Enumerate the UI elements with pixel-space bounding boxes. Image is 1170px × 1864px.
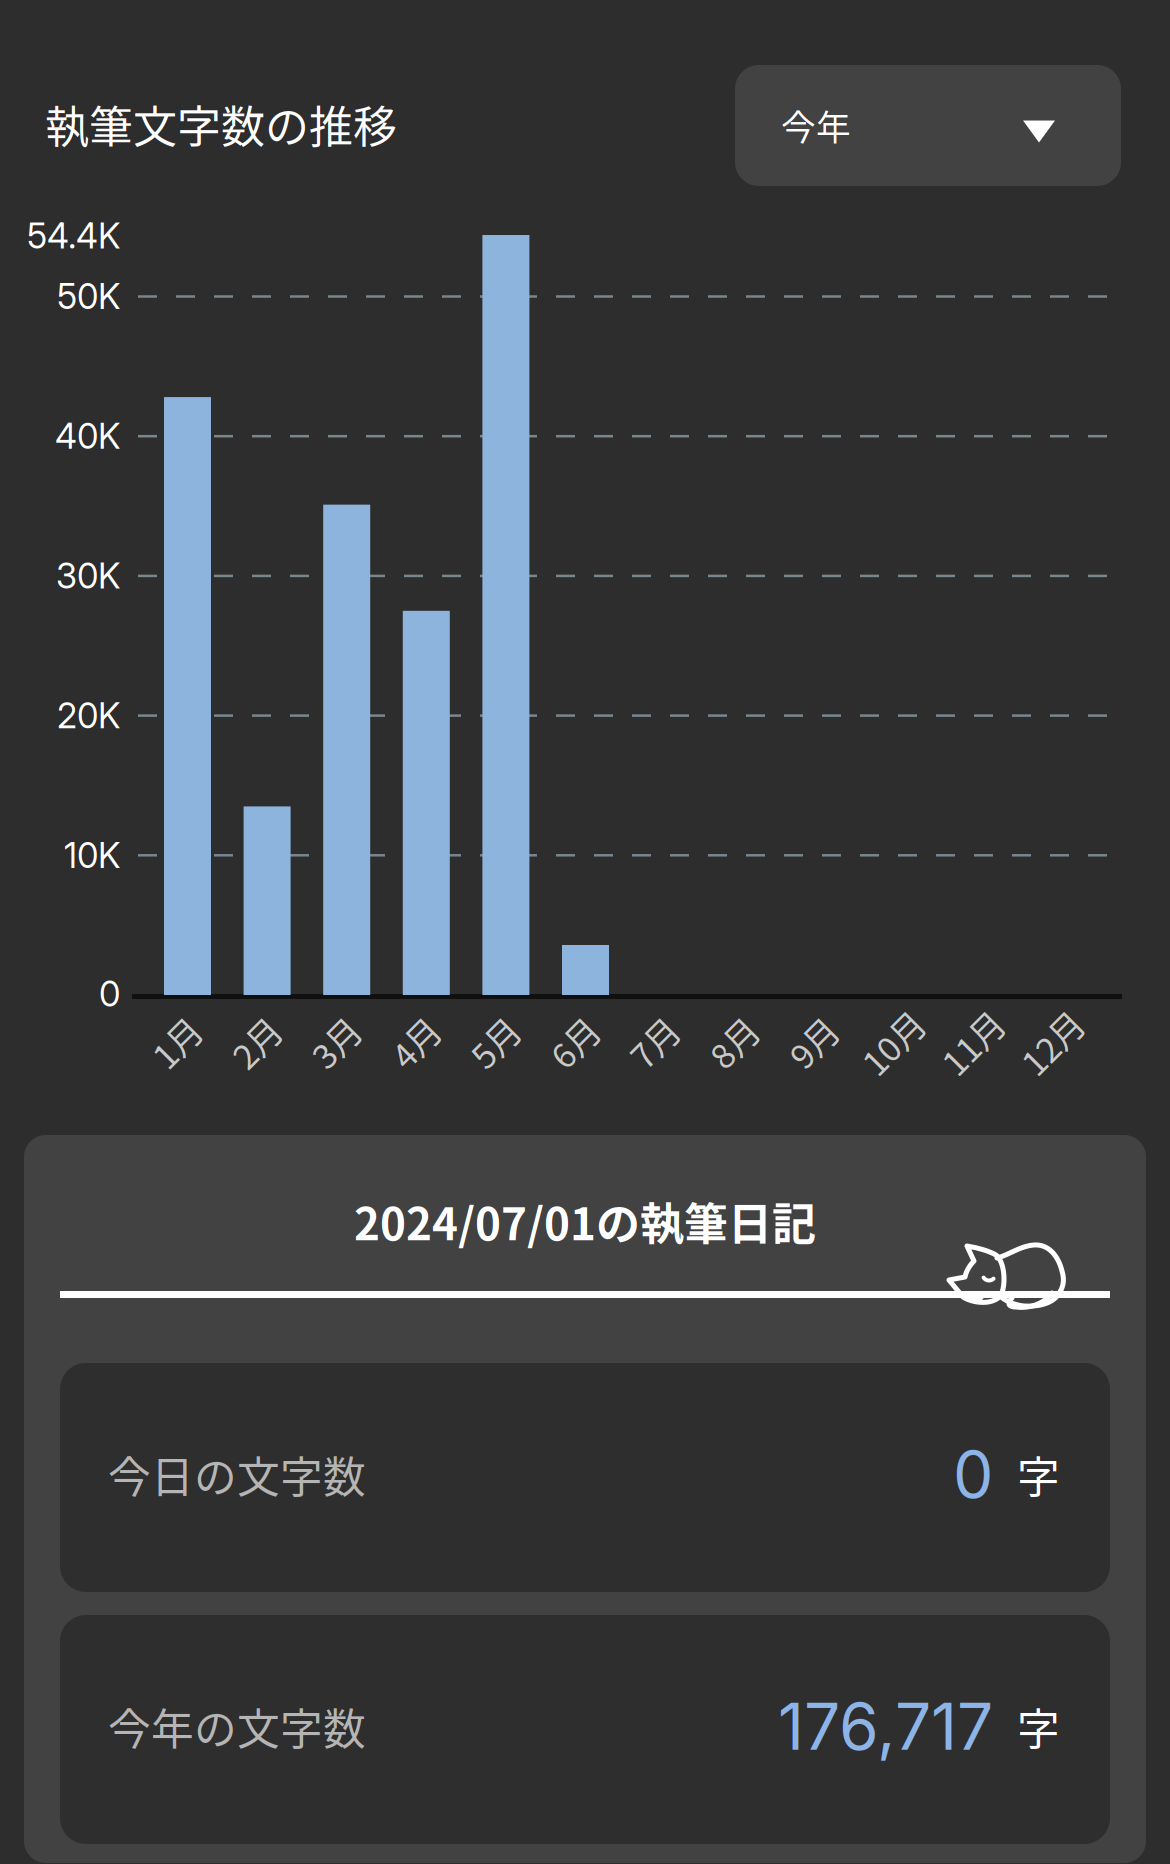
staticText: 2月 — [229, 1017, 283, 1067]
staticText: 0 — [953, 1436, 993, 1513]
staticText: 12月 — [1016, 1017, 1089, 1067]
staticText: 0 — [99, 973, 120, 1015]
staticText: 4月 — [388, 1017, 442, 1067]
staticText: 50K — [57, 275, 120, 317]
staticText: 11月 — [936, 1017, 1009, 1067]
staticText: 8月 — [707, 1017, 761, 1067]
staticText: 20K — [57, 695, 120, 736]
button[interactable]: 今年 — [735, 65, 1121, 186]
staticText: 3月 — [309, 1017, 363, 1067]
staticText: 5月 — [468, 1017, 522, 1067]
staticText: 今年 — [781, 100, 851, 151]
staticText: 7月 — [627, 1017, 681, 1067]
staticText: 54.4K — [27, 215, 120, 257]
staticText: 6月 — [547, 1017, 601, 1067]
staticText: 40K — [55, 415, 120, 457]
staticText: 10月 — [856, 1017, 929, 1067]
button[interactable]: 今年の文字数 — [60, 1615, 1110, 1844]
staticText: 176,717 — [778, 1688, 993, 1765]
staticText: 字 — [1017, 1444, 1060, 1505]
staticText: 字 — [1017, 1696, 1060, 1757]
staticText: 今年の文字数 — [108, 1696, 366, 1757]
button[interactable]: 今日の文字数 — [60, 1363, 1110, 1592]
staticText: 1月 — [149, 1017, 203, 1067]
staticText: 今日の文字数 — [108, 1444, 366, 1505]
staticText: 9月 — [786, 1017, 840, 1067]
staticText: 2024/07/01の執筆日記 — [354, 1189, 816, 1253]
staticText: 10K — [64, 834, 120, 876]
staticText: 執筆文字数の推移 — [45, 92, 397, 156]
staticText: 30K — [56, 555, 120, 597]
